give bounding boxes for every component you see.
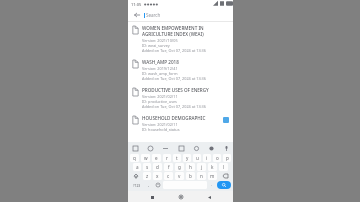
- button[interactable]: ,: [145, 181, 153, 189]
- button[interactable]: f: [164, 163, 173, 171]
- staticText: a: [136, 164, 139, 170]
- button[interactable]: m: [208, 172, 217, 180]
- staticText: ID: household_status: [142, 127, 180, 132]
- staticText: u: [196, 155, 199, 161]
- staticText: x: [156, 173, 159, 179]
- staticText: i: [206, 155, 208, 161]
- staticText: w: [144, 155, 148, 161]
- staticText: Added on Tue, Oct 07, 2024 at 13:36: [142, 48, 206, 53]
- button[interactable]: Theme: [192, 144, 200, 152]
- button[interactable]: Back: [204, 192, 214, 202]
- button[interactable]: Settings: [177, 144, 185, 152]
- staticText: l: [223, 164, 225, 170]
- button[interactable]: GIF: [161, 144, 169, 152]
- button[interactable]: Download form: [223, 117, 229, 123]
- staticText: Added on Tue, Oct 07, 2024 at 13:36: [142, 104, 206, 109]
- staticText: d: [156, 164, 159, 170]
- button[interactable]: Home: [176, 192, 186, 202]
- button[interactable]: PRODUCTIVE USES OF ENERGY: [128, 84, 233, 112]
- button[interactable]: Search: [217, 181, 231, 189]
- button[interactable]: w: [141, 154, 150, 162]
- button[interactable]: Backspace: [219, 172, 231, 180]
- button[interactable]: Emoji: [146, 144, 154, 152]
- button[interactable]: o: [213, 154, 221, 162]
- staticText: AGRICULTURE INDEX (WEAI): [142, 31, 204, 37]
- staticText: Version: 2021/02/11: [142, 94, 178, 99]
- staticText: e: [155, 155, 158, 161]
- button[interactable]: g: [175, 163, 184, 171]
- button[interactable]: Search: [144, 8, 229, 21]
- staticText: Added on Tue, Oct 07, 2024 at 13:36: [142, 76, 206, 81]
- button[interactable]: Clipboard: [131, 144, 139, 152]
- button[interactable]: Voice: [222, 144, 230, 152]
- button[interactable]: s: [143, 163, 151, 171]
- staticText: o: [216, 155, 219, 161]
- button[interactable]: u: [193, 154, 201, 162]
- staticText: ID: wash_amp_form: [142, 71, 178, 76]
- staticText: ?123: [133, 183, 141, 188]
- button[interactable]: b: [186, 172, 195, 180]
- staticText: m: [210, 173, 215, 179]
- staticText: v: [178, 173, 181, 179]
- button[interactable]: Shift: [130, 172, 141, 180]
- button[interactable]: HOUSEHOLD DEMOGRAPHIC: [128, 112, 233, 135]
- button[interactable]: y: [183, 154, 191, 162]
- button[interactable]: p: [223, 154, 231, 162]
- staticText: y: [186, 155, 189, 161]
- button[interactable]: c: [164, 172, 173, 180]
- staticText: p: [226, 155, 229, 161]
- button[interactable]: ?123: [130, 181, 144, 189]
- staticText: f: [168, 164, 170, 170]
- button[interactable]: e: [152, 154, 161, 162]
- button[interactable]: x: [153, 172, 162, 180]
- staticText: Version: 2021/10/05: [142, 38, 178, 43]
- button[interactable]: z: [143, 172, 151, 180]
- staticText: Search: [146, 12, 161, 18]
- staticText: g: [178, 164, 181, 170]
- staticText: Version: 2021/02/11: [142, 122, 178, 127]
- button[interactable]: i: [203, 154, 211, 162]
- staticText: n: [200, 173, 203, 179]
- staticText: WOMEN EMPOWERMENT IN: [142, 25, 204, 31]
- staticText: t: [176, 155, 178, 161]
- staticText: HOUSEHOLD DEMOGRAPHIC: [142, 115, 206, 121]
- staticText: 11:05: [131, 2, 142, 7]
- staticText: c: [167, 173, 170, 179]
- button[interactable]: v: [175, 172, 184, 180]
- staticText: b: [189, 173, 192, 179]
- button[interactable]: Recents: [147, 192, 157, 202]
- button[interactable]: h: [186, 163, 195, 171]
- button[interactable]: t: [173, 154, 181, 162]
- button[interactable]: r: [163, 154, 171, 162]
- staticText: z: [146, 173, 149, 179]
- staticText: ,: [148, 182, 150, 188]
- staticText: .: [211, 182, 213, 188]
- button[interactable]: j: [197, 163, 206, 171]
- button[interactable]: Emoji: [153, 181, 162, 189]
- button[interactable]: d: [153, 163, 162, 171]
- button[interactable]: WOMEN EMPOWERMENT IN: [128, 22, 233, 56]
- button[interactable]: l: [219, 163, 228, 171]
- staticText: h: [189, 164, 192, 170]
- button[interactable]: k: [208, 163, 217, 171]
- button[interactable]: q: [130, 154, 139, 162]
- staticText: WASH_AMP 2018: [142, 59, 179, 65]
- button[interactable]: n: [197, 172, 206, 180]
- staticText: r: [166, 155, 168, 161]
- staticText: PRODUCTIVE USES OF ENERGY: [142, 87, 209, 93]
- button[interactable]: .: [208, 181, 216, 189]
- staticText: j: [201, 164, 203, 170]
- staticText: s: [146, 164, 149, 170]
- staticText: ID: weai_survey: [142, 43, 170, 48]
- staticText: q: [133, 155, 136, 161]
- staticText: ID: productive_uses: [142, 99, 177, 104]
- button[interactable]: Back: [132, 10, 141, 19]
- button[interactable]: WASH_AMP 2018: [128, 56, 233, 84]
- button[interactable]: Sticker: [207, 144, 215, 152]
- button[interactable]: a: [133, 163, 141, 171]
- staticText: k: [211, 164, 214, 170]
- staticText: Version: 2019/12/41: [142, 66, 178, 71]
